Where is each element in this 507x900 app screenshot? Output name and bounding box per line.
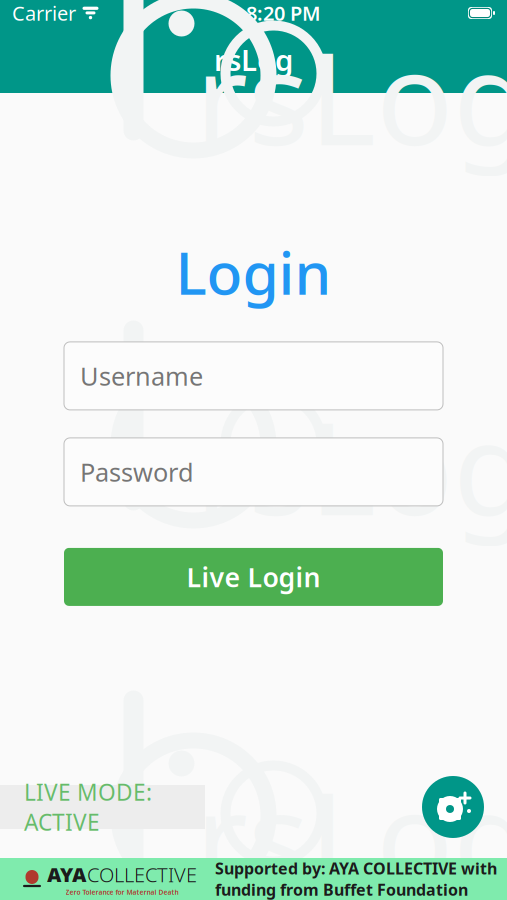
staticText: rsLog bbox=[195, 10, 507, 180]
button[interactable]: Settings bbox=[422, 776, 484, 838]
staticText: 8:20 PM bbox=[246, 0, 321, 26]
staticText: AYA bbox=[47, 861, 87, 888]
button[interactable]: Live Login bbox=[64, 548, 443, 606]
staticText: rsLog bbox=[195, 750, 507, 900]
staticText: rsLog bbox=[214, 40, 293, 79]
staticText: COLLECTIVE bbox=[87, 861, 197, 888]
staticText: LIVE MODE: ACTIVE bbox=[24, 777, 152, 837]
staticText: Zero Tolerance for Maternal Death bbox=[65, 888, 178, 897]
staticText: Username bbox=[80, 359, 203, 393]
staticText: Supported by: AYA COLLECTIVE with fundin… bbox=[215, 858, 497, 900]
staticText: rsLog bbox=[195, 380, 507, 550]
staticText: Login bbox=[175, 233, 331, 311]
staticText: Password bbox=[80, 455, 194, 489]
staticText: Carrier bbox=[12, 0, 76, 26]
staticText: Live Login bbox=[186, 559, 320, 595]
